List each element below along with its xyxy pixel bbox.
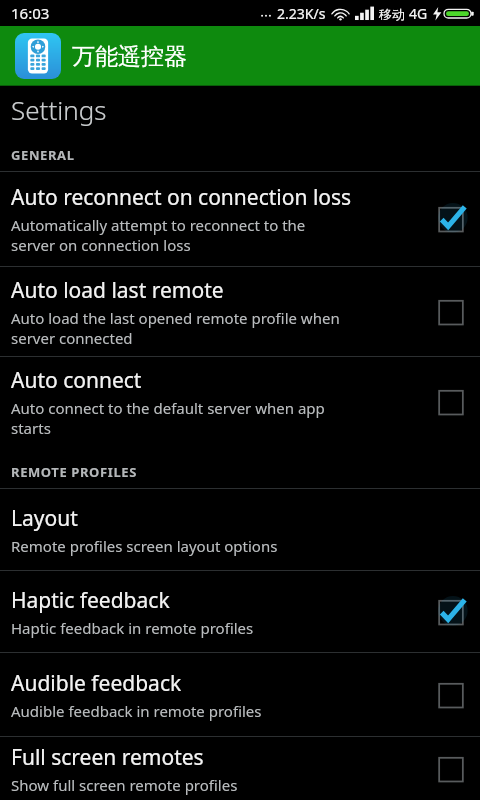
staticText: Full screen remotes bbox=[11, 743, 204, 772]
button[interactable]: Auto connect, not checked bbox=[422, 357, 480, 446]
button[interactable]: Full screen remotes, not checked bbox=[422, 737, 480, 800]
staticText: Show full screen remote profiles bbox=[11, 775, 238, 795]
button[interactable]: Auto connect bbox=[0, 357, 480, 446]
staticText: Layout bbox=[11, 504, 78, 533]
staticText: Audible feedback bbox=[11, 669, 182, 698]
button[interactable]: Haptic feedback, checked bbox=[422, 571, 480, 652]
staticText: 4G bbox=[409, 4, 428, 23]
staticText: Haptic feedback in remote profiles bbox=[11, 618, 254, 638]
staticText: Automatically attempt to reconnect to th… bbox=[11, 215, 306, 235]
button[interactable]: Audible feedback bbox=[0, 653, 480, 736]
staticText: 2.23K/s bbox=[277, 4, 326, 23]
staticText: Haptic feedback bbox=[11, 586, 170, 615]
staticText: Audible feedback in remote profiles bbox=[11, 701, 262, 721]
staticText: Settings bbox=[11, 92, 107, 127]
staticText: Remote profiles screen layout options bbox=[11, 536, 278, 556]
button[interactable]: Haptic feedback bbox=[0, 571, 480, 652]
button[interactable]: Auto load last remote bbox=[0, 267, 480, 356]
staticText: 移动 bbox=[379, 6, 405, 22]
staticText: Auto connect bbox=[11, 366, 142, 395]
staticText: starts bbox=[11, 418, 51, 438]
staticText: 16:03 bbox=[11, 3, 50, 23]
button[interactable]: Audible feedback, not checked bbox=[422, 653, 480, 736]
staticText: Auto load last remote bbox=[11, 276, 224, 305]
staticText: Auto reconnect on connection loss bbox=[11, 183, 352, 212]
button[interactable]: Auto reconnect on connection loss, check… bbox=[422, 172, 480, 266]
staticText: Auto load the last opened remote profile… bbox=[11, 308, 340, 328]
staticText: GENERAL bbox=[11, 146, 75, 164]
button[interactable]: Auto load last remote, not checked bbox=[422, 267, 480, 356]
staticText: server on connection loss bbox=[11, 235, 191, 255]
button[interactable]: Layout bbox=[0, 489, 480, 570]
staticText: 万能遥控器 bbox=[72, 42, 187, 71]
staticText: Auto connect to the default server when … bbox=[11, 398, 325, 418]
button[interactable]: Auto reconnect on connection loss bbox=[0, 172, 480, 266]
button[interactable]: Full screen remotes bbox=[0, 737, 480, 800]
staticText: server connected bbox=[11, 328, 133, 348]
staticText: REMOTE PROFILES bbox=[11, 463, 137, 481]
